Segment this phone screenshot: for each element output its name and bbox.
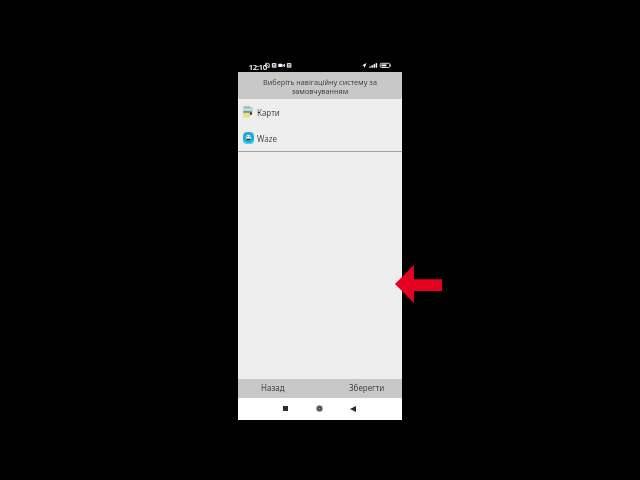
- staticText: Назад: [261, 382, 285, 393]
- staticText: Waze: [257, 133, 278, 144]
- staticText: Карти: [257, 107, 280, 118]
- button[interactable]: Recent apps: [279, 402, 292, 415]
- button[interactable]: Зберегти: [320, 379, 402, 398]
- staticText: Зберегти: [349, 382, 385, 393]
- staticText: 12:10: [249, 62, 268, 72]
- button[interactable]: Home: [313, 402, 326, 415]
- button[interactable]: Назад: [238, 379, 320, 398]
- button[interactable]: Waze: [238, 125, 402, 151]
- staticText: Виберіть навігаційну систему за замовчув…: [250, 77, 390, 96]
- button[interactable]: Карти: [238, 99, 402, 125]
- button[interactable]: Back: [346, 402, 359, 415]
